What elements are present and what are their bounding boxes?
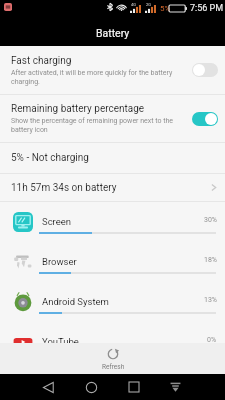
- staticText: 30%: [204, 216, 217, 224]
- button[interactable]: Remaining battery percentage: [0, 95, 225, 142]
- staticText: 5% - Not charging: [11, 152, 217, 164]
- staticText: 4G: [131, 2, 136, 7]
- staticText: Refresh: [102, 363, 125, 371]
- staticText: 18%: [204, 256, 217, 264]
- staticText: Battery: [96, 27, 130, 39]
- staticText: 0%: [207, 336, 217, 344]
- staticText: 13%: [204, 296, 217, 304]
- button[interactable]: 5% - Not charging: [0, 143, 225, 173]
- button[interactable]: YouTube: [0, 322, 225, 362]
- staticText: 4G: [131, 2, 136, 7]
- staticText: YouTube: [42, 336, 79, 347]
- staticText: Browser: [42, 256, 77, 267]
- staticText: Android System: [42, 296, 109, 307]
- staticText: 11h 57m 34s on battery: [11, 182, 211, 194]
- button[interactable]: Android System: [0, 282, 225, 322]
- button[interactable]: 11h 57m 34s on battery: [0, 174, 225, 201]
- staticText: 2G: [146, 2, 151, 7]
- staticText: Screen: [42, 216, 72, 227]
- button[interactable]: Browser: [0, 242, 225, 282]
- button[interactable]: Back: [35, 374, 61, 400]
- staticText: After activated, it will be more quickly…: [11, 69, 186, 86]
- button[interactable]: Home: [78, 374, 104, 400]
- staticText: Fast charging: [11, 55, 72, 67]
- button[interactable]: Hide keyboard: [162, 374, 188, 400]
- staticText: Show the percentage of remaining power n…: [11, 117, 186, 134]
- button[interactable]: On: [192, 112, 218, 126]
- button[interactable]: Screen: [0, 202, 225, 242]
- staticText: 5%: [160, 4, 171, 13]
- button[interactable]: Fast charging: [0, 46, 225, 94]
- staticText: 7:56 PM: [190, 3, 224, 14]
- staticText: 7:56 PM: [190, 3, 224, 14]
- button[interactable]: Off: [192, 63, 218, 77]
- staticText: 2G: [146, 2, 151, 7]
- button[interactable]: Recents: [121, 374, 147, 400]
- staticText: Remaining battery percentage: [11, 103, 145, 115]
- staticText: 5%: [160, 4, 171, 13]
- button[interactable]: Refresh: [83, 343, 143, 374]
